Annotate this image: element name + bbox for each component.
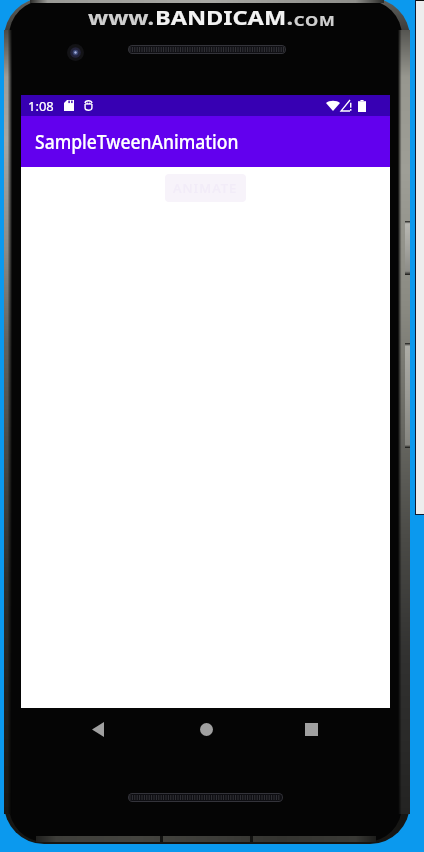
staticText: COM — [294, 12, 336, 30]
staticText: BANDICAM — [155, 5, 286, 31]
button[interactable]: Back — [78, 711, 118, 747]
button[interactable]: Recent apps — [291, 711, 331, 747]
staticText: 1:08 — [28, 97, 54, 115]
staticText: www. — [88, 5, 155, 31]
button[interactable]: SampleTweenAnimation — [21, 116, 390, 167]
staticText: . — [286, 5, 294, 31]
button[interactable]: Home — [186, 711, 226, 747]
staticText: SampleTweenAnimation — [35, 128, 239, 155]
